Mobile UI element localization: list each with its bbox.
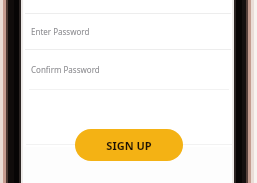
button[interactable]: Enter Password [25,14,231,49]
staticText: Enter Password [31,26,90,37]
button[interactable]: Confirm Password [25,50,231,89]
staticText: SIGN UP [106,138,152,153]
staticText: Confirm Password [31,64,100,75]
button[interactable]: SIGN UP [75,129,183,161]
